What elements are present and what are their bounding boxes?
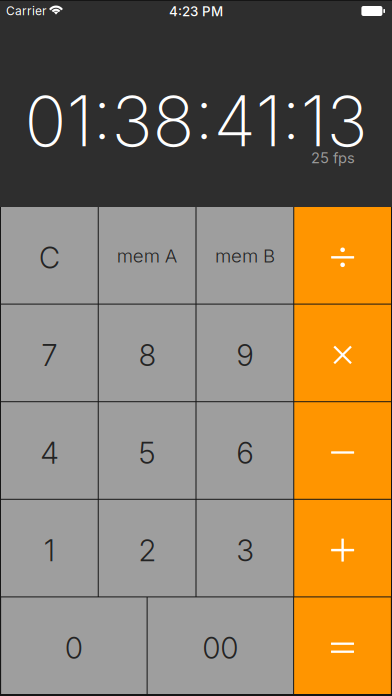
staticText: 3 [236,533,253,568]
staticText: 6 [236,435,253,471]
button[interactable]: 5 [99,402,196,499]
button[interactable]: 00 [148,597,293,694]
staticText: C [39,240,60,276]
staticText: 0 [65,630,83,666]
button[interactable]: 9 [196,305,293,401]
staticText: Carrier [6,4,47,18]
button[interactable]: 0 [1,597,147,694]
button[interactable]: 1 [1,500,98,596]
staticText: 4:23 PM [169,3,223,19]
button[interactable]: 6 [196,402,293,499]
button[interactable]: Subtract [294,402,391,499]
staticText: 4 [40,435,58,471]
button[interactable]: 8 [99,305,196,401]
staticText: 1 [44,533,55,568]
button[interactable]: Add [294,500,391,596]
staticText: 00 [202,630,238,666]
button[interactable]: Equals [294,597,391,694]
button[interactable]: Multiply [294,305,391,401]
staticText: mem B [215,244,275,267]
button[interactable]: 4 [1,402,98,499]
button[interactable]: mem A [99,207,196,304]
staticText: 01:38:41:13 [24,79,367,163]
staticText: 25 fps [311,149,355,167]
staticText: 2 [139,533,156,568]
button[interactable]: 7 [1,305,98,401]
button[interactable]: 3 [196,500,293,596]
staticText: 8 [139,338,156,373]
button[interactable]: 2 [99,500,196,596]
staticText: 5 [139,435,156,471]
button[interactable]: Divide [294,207,391,304]
button[interactable]: mem B [196,207,293,304]
staticText: 9 [236,338,253,373]
staticText: mem A [117,244,178,267]
staticText: 7 [41,338,57,373]
button[interactable]: C [1,207,98,304]
